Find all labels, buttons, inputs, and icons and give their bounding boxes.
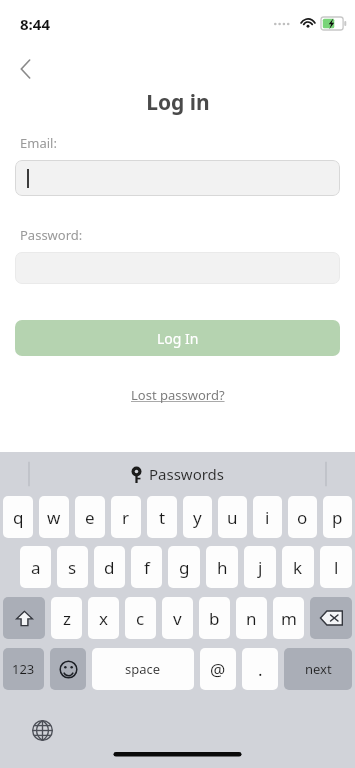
staticText: c — [136, 607, 145, 630]
staticText: Password: — [20, 226, 83, 244]
button[interactable]: 123 — [3, 648, 44, 690]
staticText: f — [144, 556, 150, 579]
button[interactable] — [15, 160, 340, 196]
button[interactable]: m — [273, 597, 304, 639]
button[interactable]: q — [3, 496, 33, 538]
staticText: l — [334, 556, 339, 579]
button[interactable]: Passwords — [0, 452, 355, 496]
button[interactable]: Change keyboard language — [26, 714, 58, 746]
staticText: next — [305, 660, 332, 678]
staticText: v — [173, 607, 182, 630]
staticText: k — [293, 556, 303, 579]
staticText: Log in — [146, 88, 210, 117]
button[interactable]: Back — [8, 52, 42, 86]
staticText: 8:44 — [20, 14, 50, 34]
button[interactable]: t — [147, 496, 177, 538]
button[interactable]: o — [288, 496, 317, 538]
staticText: n — [246, 607, 257, 630]
button[interactable]: c — [125, 597, 156, 639]
staticText: h — [217, 556, 228, 579]
staticText: s — [68, 556, 77, 579]
button[interactable]: d — [94, 546, 125, 588]
staticText: Log In — [157, 329, 199, 348]
button[interactable]: @ — [200, 648, 236, 690]
button[interactable]: y — [183, 496, 212, 538]
staticText: Lost password? — [131, 386, 225, 404]
button[interactable]: f — [131, 546, 162, 588]
staticText: b — [209, 607, 220, 630]
button[interactable]: s — [57, 546, 88, 588]
button[interactable]: b — [199, 597, 230, 639]
staticText: m — [281, 607, 297, 630]
staticText: d — [104, 556, 115, 579]
button[interactable]: j — [244, 546, 276, 588]
button[interactable]: Log In — [15, 320, 340, 356]
staticText: p — [332, 506, 343, 529]
staticText: Email: — [20, 134, 57, 152]
button[interactable]: g — [168, 546, 200, 588]
button[interactable]: Shift — [3, 597, 45, 639]
button[interactable]: Backspace — [310, 597, 352, 639]
staticText: e — [85, 506, 95, 529]
staticText: g — [179, 556, 190, 579]
staticText: x — [99, 607, 108, 630]
button[interactable]: z — [51, 597, 82, 639]
button[interactable]: a — [20, 546, 51, 588]
staticText: i — [265, 506, 270, 529]
staticText: o — [297, 506, 308, 529]
button[interactable]: w — [39, 496, 69, 538]
staticText: y — [193, 506, 202, 529]
staticText: q — [13, 506, 24, 529]
staticText: space — [125, 660, 161, 678]
staticText: 123 — [12, 660, 35, 678]
button[interactable]: k — [282, 546, 314, 588]
staticText: t — [159, 506, 166, 529]
staticText: w — [47, 506, 61, 529]
button[interactable]: v — [162, 597, 193, 639]
button[interactable]: . — [242, 648, 278, 690]
staticText: u — [227, 506, 238, 529]
button[interactable]: i — [253, 496, 282, 538]
button[interactable]: Emoji — [50, 648, 86, 690]
button[interactable]: r — [111, 496, 141, 538]
button[interactable]: h — [206, 546, 238, 588]
button[interactable]: space — [92, 648, 194, 690]
staticText: . — [258, 658, 263, 681]
button[interactable]: next — [284, 648, 352, 690]
staticText: a — [31, 556, 41, 579]
button[interactable]: p — [323, 496, 352, 538]
button[interactable]: l — [320, 546, 352, 588]
staticText: r — [122, 506, 130, 529]
button[interactable]: e — [75, 496, 105, 538]
button[interactable]: u — [218, 496, 247, 538]
staticText: j — [258, 556, 263, 579]
staticText: z — [63, 607, 71, 630]
button[interactable]: n — [236, 597, 267, 639]
staticText: @ — [210, 658, 226, 681]
button[interactable]: Lost password? — [125, 380, 231, 410]
button[interactable]: x — [88, 597, 119, 639]
staticText: Passwords — [149, 464, 225, 484]
